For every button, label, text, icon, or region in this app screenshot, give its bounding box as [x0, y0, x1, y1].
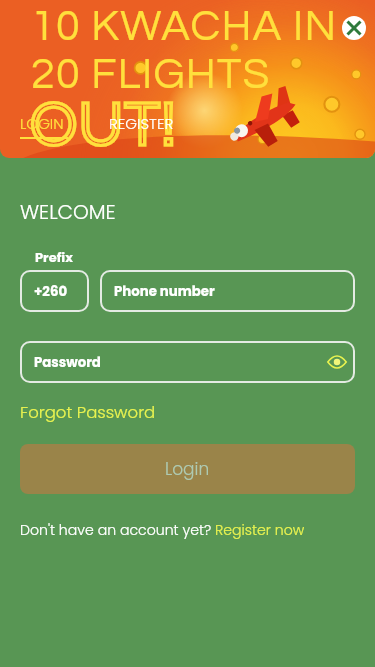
- button[interactable]: +260: [20, 270, 89, 312]
- staticText: Don't have an account yet?: [20, 520, 212, 540]
- button[interactable]: Password: [20, 341, 355, 383]
- button[interactable]: Phone number: [100, 270, 355, 312]
- button[interactable]: Login: [20, 444, 355, 494]
- button[interactable]: Register now: [215, 520, 305, 540]
- button[interactable]: REGISTER: [109, 113, 174, 137]
- staticText: REGISTER: [109, 113, 174, 134]
- button[interactable]: Close: [342, 16, 366, 40]
- staticText: +260: [34, 282, 68, 301]
- staticText: Password: [34, 353, 101, 372]
- button[interactable]: Show password: [324, 349, 350, 375]
- staticText: Phone number: [114, 282, 215, 301]
- staticText: Login: [165, 457, 210, 481]
- button[interactable]: Forgot Password: [20, 401, 156, 424]
- staticText: Prefix: [35, 248, 73, 266]
- button[interactable]: LOGIN: [20, 113, 68, 139]
- staticText: WELCOME: [20, 198, 116, 226]
- staticText: LOGIN: [20, 113, 64, 134]
